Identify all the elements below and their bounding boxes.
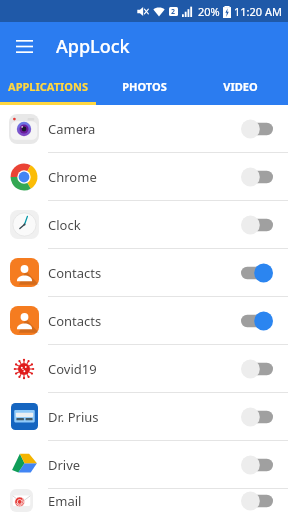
button[interactable]: Dr. Prius	[0, 393, 288, 440]
button[interactable]: Open navigation menu	[8, 30, 40, 62]
button[interactable]: Drive	[0, 441, 288, 488]
button[interactable]: Toggle lock for Email	[240, 489, 274, 512]
button[interactable]: APPLICATIONS	[0, 70, 96, 102]
button[interactable]: Toggle lock for Dr. Prius	[240, 404, 274, 430]
staticText: Dr. Prius	[48, 408, 240, 426]
button[interactable]: Contacts	[0, 297, 288, 344]
button[interactable]: PHOTOS	[96, 70, 192, 102]
button[interactable]: Toggle lock for Covid19	[240, 356, 274, 382]
button[interactable]: Contacts	[0, 249, 288, 296]
button[interactable]: Camera	[0, 105, 288, 152]
staticText: Email	[48, 492, 240, 510]
button[interactable]: Clock	[0, 201, 288, 248]
staticText: PHOTOS	[122, 79, 167, 94]
staticText: 20%	[198, 4, 220, 19]
button[interactable]: Toggle lock for Contacts	[240, 308, 274, 334]
button[interactable]: Toggle lock for Contacts	[240, 260, 274, 286]
button[interactable]: Toggle lock for Chrome	[240, 164, 274, 190]
staticText: Chrome	[48, 168, 240, 186]
button[interactable]: Chrome	[0, 153, 288, 200]
button[interactable]: VIDEO	[192, 70, 288, 102]
staticText: Drive	[48, 456, 240, 474]
button[interactable]: Covid19	[0, 345, 288, 392]
button[interactable]: Email	[0, 489, 288, 512]
staticText: AppLock	[56, 34, 130, 59]
staticText: VIDEO	[223, 79, 258, 94]
staticText: 11:20 AM	[234, 4, 282, 19]
button[interactable]: Toggle lock for Clock	[240, 212, 274, 238]
staticText: Covid19	[48, 360, 240, 378]
staticText: Camera	[48, 120, 240, 138]
staticText: 2	[171, 7, 176, 16]
button[interactable]: Toggle lock for Camera	[240, 116, 274, 142]
staticText: Clock	[48, 216, 240, 234]
button[interactable]: Toggle lock for Drive	[240, 452, 274, 478]
staticText: APPLICATIONS	[8, 79, 88, 94]
staticText: Contacts	[48, 312, 240, 330]
staticText: Contacts	[48, 264, 240, 282]
